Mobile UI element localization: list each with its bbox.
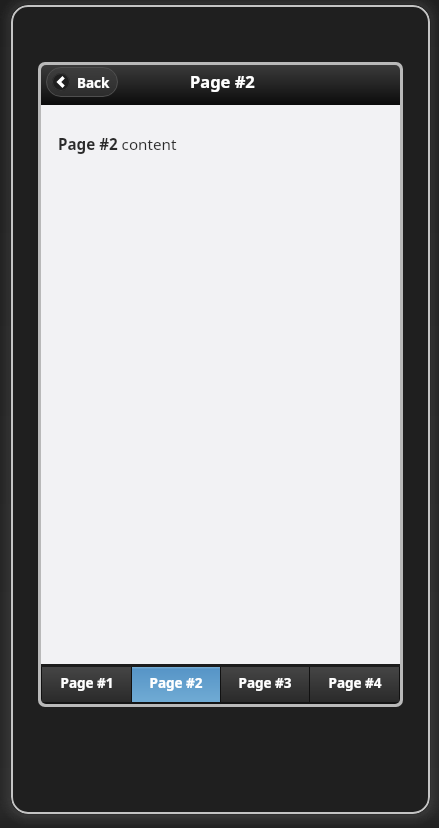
staticText: Page #2 content (58, 134, 177, 155)
button[interactable]: Page #2 (132, 667, 220, 702)
staticText: Page #2 (190, 70, 255, 92)
staticText: Back (77, 74, 110, 92)
button[interactable]: Page #4 (310, 667, 399, 702)
staticText: Page #2 (149, 674, 203, 692)
staticText: Page #4 (328, 674, 382, 692)
button[interactable]: Page #1 (42, 667, 131, 702)
button[interactable]: Page #3 (221, 667, 309, 702)
button[interactable]: Back (46, 67, 118, 97)
staticText: Page #1 (60, 674, 114, 692)
staticText: Page #3 (238, 674, 292, 692)
